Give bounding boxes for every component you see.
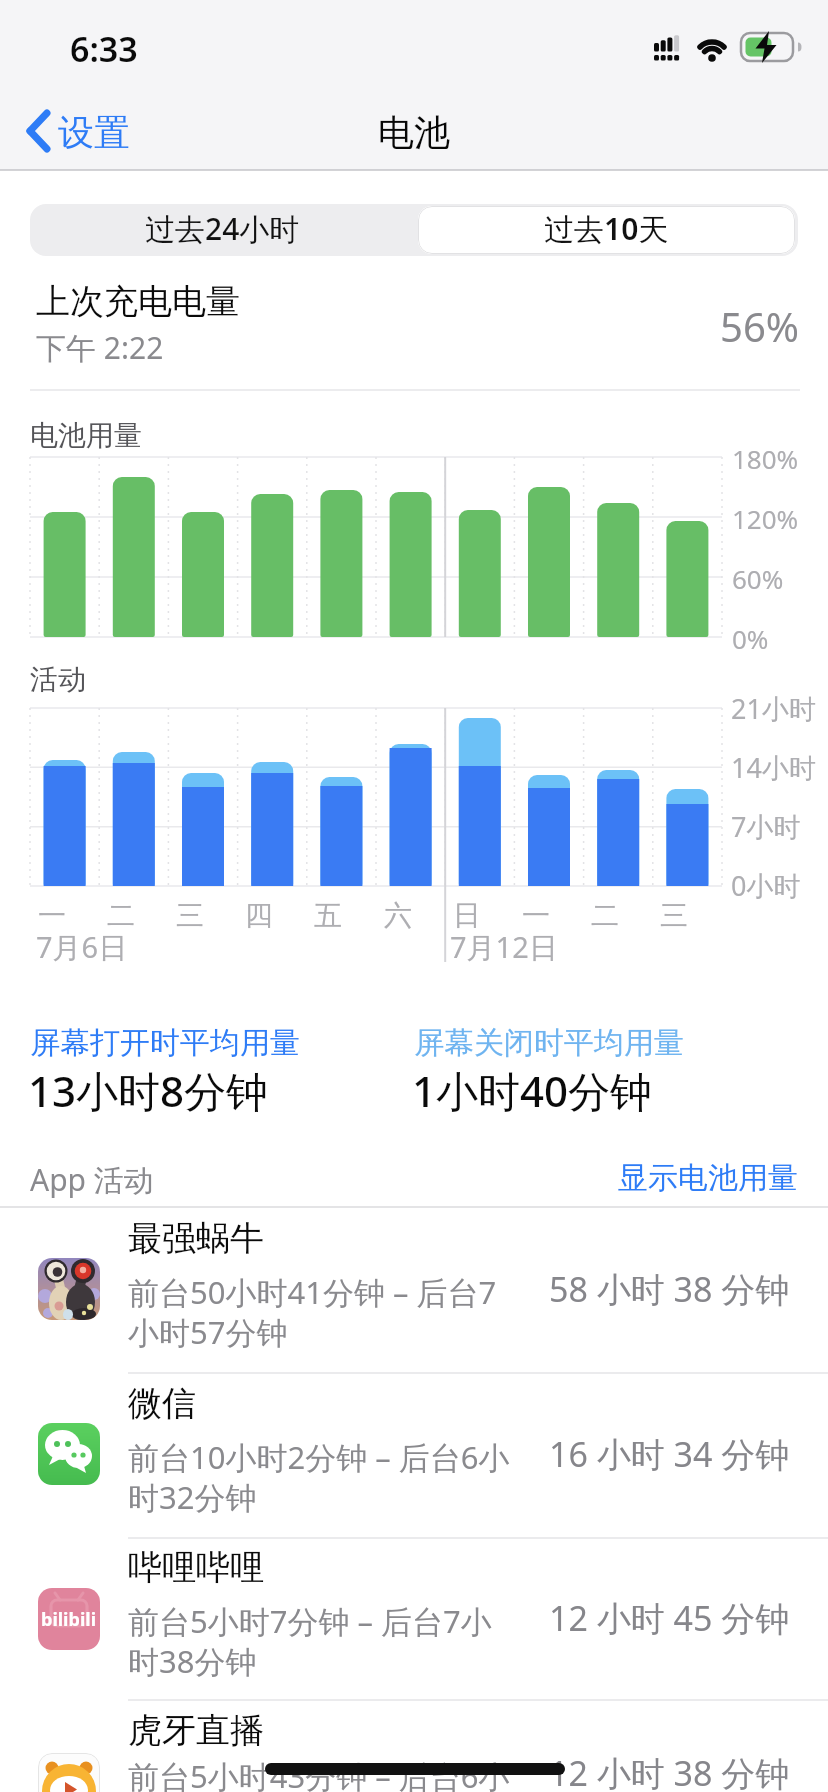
staticText: 电池 <box>378 110 450 155</box>
staticText: 7月6日 <box>36 927 128 967</box>
staticText: 0小时 <box>731 867 801 904</box>
staticText: 1小时40分钟 <box>412 1062 653 1119</box>
staticText: 180% <box>732 441 799 476</box>
staticText: 二 <box>591 898 619 933</box>
button[interactable] <box>0 1532 828 1692</box>
staticText: 小时57分钟 <box>128 1311 288 1353</box>
staticText: 哔哩哔哩 <box>128 1546 264 1589</box>
staticText: 58 小时 38 分钟 <box>549 1266 790 1312</box>
staticText: 56% <box>720 299 799 353</box>
staticText: 过去10天 <box>544 208 669 249</box>
button[interactable]: 过去24小时 <box>30 204 414 256</box>
staticText: 设置 <box>58 110 130 155</box>
staticText: 五 <box>314 898 342 933</box>
staticText: 一 <box>522 898 550 933</box>
staticText: 四 <box>245 898 273 933</box>
button[interactable] <box>20 104 160 162</box>
button[interactable]: 过去10天 <box>414 204 798 256</box>
staticText: 一 <box>38 898 66 933</box>
staticText: 显示电池用量 <box>618 1159 798 1197</box>
staticText: 下午 2:22 <box>36 327 164 368</box>
staticText: 16 小时 34 分钟 <box>549 1431 790 1477</box>
staticText: 微信 <box>128 1382 196 1425</box>
staticText: 时38分钟 <box>128 1640 257 1682</box>
staticText: 屏幕关闭时平均用量 <box>414 1024 684 1062</box>
staticText: 活动 <box>30 662 86 697</box>
button[interactable] <box>0 1695 828 1792</box>
staticText: 屏幕打开时平均用量 <box>30 1024 300 1062</box>
staticText: 最强蜗牛 <box>128 1217 264 1260</box>
staticText: 7小时 <box>731 808 801 845</box>
staticText: 三 <box>660 898 688 933</box>
staticText: 60% <box>732 561 784 596</box>
button[interactable] <box>0 1203 828 1363</box>
staticText: 21小时 <box>731 690 816 727</box>
staticText: 三 <box>176 898 204 933</box>
staticText: 6:33 <box>70 26 138 72</box>
staticText: 电池用量 <box>30 418 142 453</box>
staticText: 14小时 <box>731 749 816 786</box>
staticText: 二 <box>107 898 135 933</box>
staticText: 虎牙直播 <box>128 1709 264 1752</box>
staticText: 7月12日 <box>450 927 558 967</box>
staticText: 过去24小时 <box>145 208 300 249</box>
staticText: 0% <box>732 621 769 656</box>
staticText: 前台5小时43分钟 – 后台6小 <box>128 1755 510 1792</box>
staticText: 六 <box>384 898 412 933</box>
button[interactable] <box>598 1155 798 1195</box>
staticText: 13小时8分钟 <box>28 1062 269 1119</box>
staticText: 12 小时 38 分钟 <box>549 1750 790 1792</box>
staticText: 前台10小时2分钟 – 后台6小 <box>128 1436 510 1478</box>
staticText: 120% <box>732 501 799 536</box>
staticText: bilibili <box>41 1607 97 1632</box>
staticText: 12 小时 45 分钟 <box>549 1595 790 1641</box>
staticText: 前台5小时7分钟 – 后台7小 <box>128 1600 492 1642</box>
staticText: 前台50小时41分钟 – 后台7 <box>128 1271 497 1313</box>
button[interactable] <box>0 1368 828 1528</box>
staticText: 时32分钟 <box>128 1476 257 1518</box>
staticText: 上次充电电量 <box>36 280 240 323</box>
staticText: App 活动 <box>30 1159 154 1200</box>
staticText: 日 <box>453 898 481 933</box>
